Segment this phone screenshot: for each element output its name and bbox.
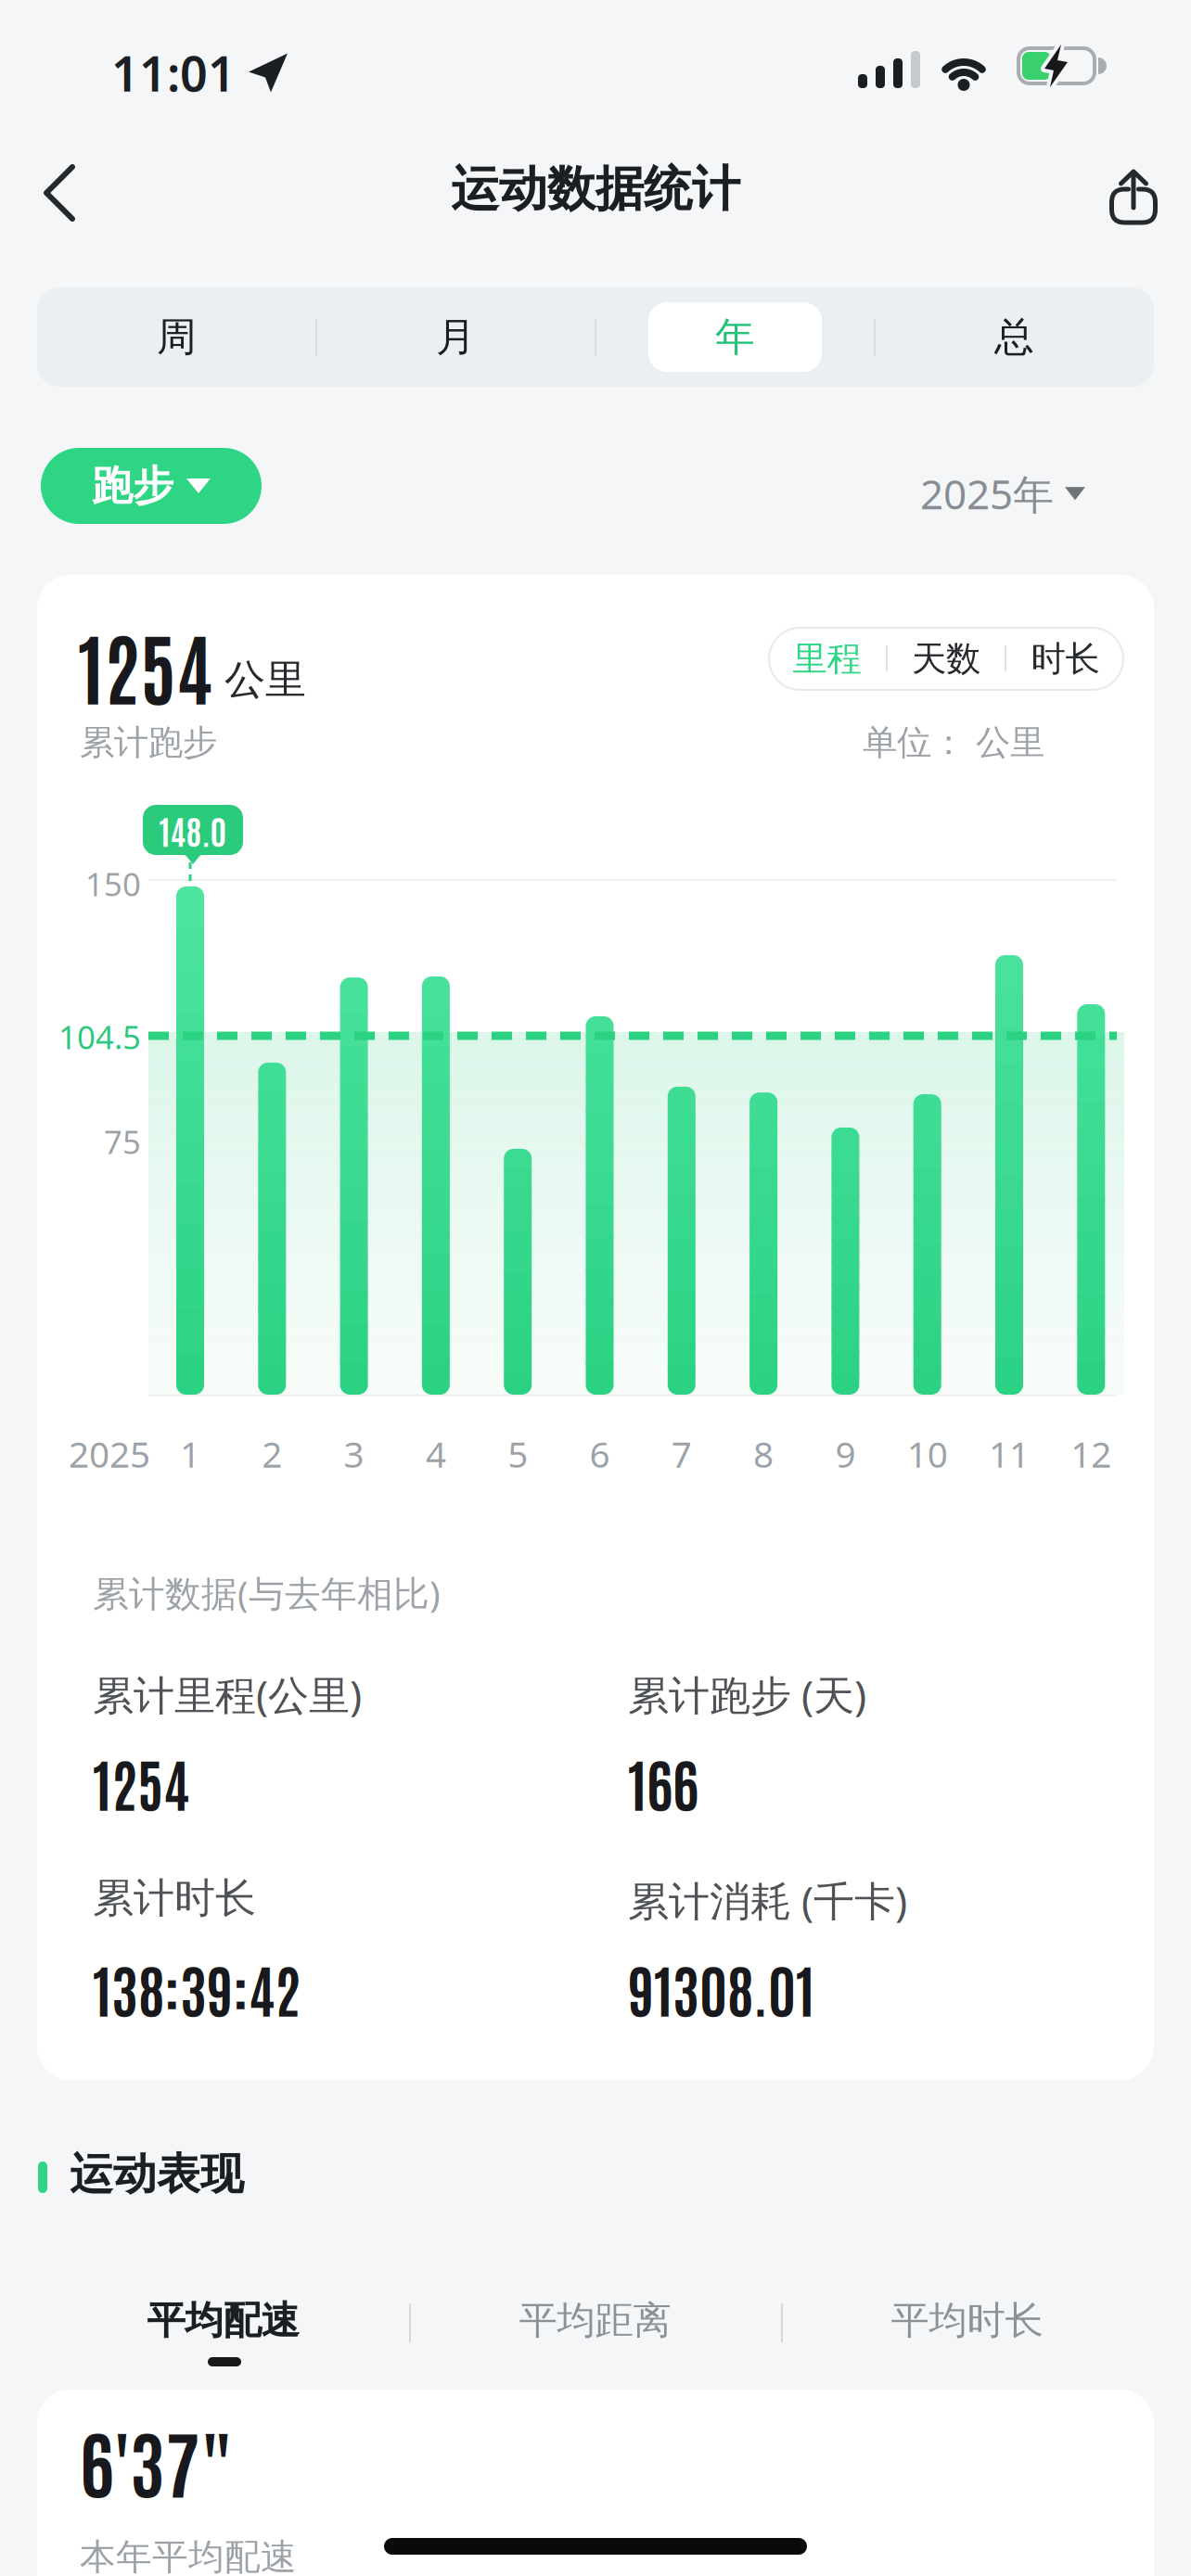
staticText: 累计消耗 (千卡) bbox=[628, 1873, 907, 1927]
staticText: 2 bbox=[262, 1430, 282, 1477]
staticText: 5 bbox=[508, 1430, 528, 1477]
staticText: 9 bbox=[835, 1430, 856, 1477]
button[interactable]: Share bbox=[1082, 150, 1156, 224]
staticText: 周 bbox=[157, 313, 197, 361]
staticText: 1254 bbox=[93, 1745, 189, 1819]
staticText: 104.5 bbox=[58, 1015, 141, 1058]
button[interactable]: 平均配速 bbox=[37, 2297, 409, 2344]
button[interactable]: 天数 bbox=[888, 638, 1005, 680]
button[interactable]: 年 bbox=[595, 287, 875, 387]
staticText: 里程 bbox=[793, 638, 861, 680]
button[interactable]: 2025年 bbox=[920, 466, 1085, 521]
staticText: 8 bbox=[753, 1430, 774, 1477]
button[interactable]: 时长 bbox=[1006, 638, 1124, 680]
button[interactable]: 周 bbox=[37, 287, 316, 387]
button[interactable]: 平均距离 bbox=[409, 2297, 781, 2344]
staticText: 运动表现 bbox=[70, 2148, 244, 2201]
staticText: 11:01 bbox=[111, 41, 236, 105]
staticText: 平均距离 bbox=[519, 2297, 671, 2344]
staticText: 累计跑步 (天) bbox=[628, 1667, 866, 1721]
staticText: 6'37" bbox=[80, 2412, 234, 2508]
staticText: 累计跑步 bbox=[80, 721, 217, 764]
button[interactable]: Back bbox=[28, 156, 102, 230]
staticText: 148.0 bbox=[159, 808, 227, 852]
staticText: 年 bbox=[715, 313, 755, 361]
staticText: 138:39:42 bbox=[93, 1951, 301, 2025]
staticText: 运动数据统计 bbox=[451, 159, 740, 219]
staticText: 平均时长 bbox=[891, 2297, 1043, 2344]
staticText: 累计数据(与去年相比) bbox=[93, 1569, 441, 1617]
staticText: 月 bbox=[436, 313, 476, 361]
staticText: 本年平均配速 bbox=[80, 2535, 297, 2576]
staticText: 总 bbox=[994, 313, 1034, 361]
staticText: 累计时长 bbox=[93, 1873, 256, 1923]
staticText: 6 bbox=[589, 1430, 610, 1477]
staticText: 1 bbox=[180, 1430, 200, 1477]
staticText: 跑步 bbox=[92, 461, 173, 511]
button[interactable]: 月 bbox=[316, 287, 595, 387]
staticText: 1254 bbox=[78, 614, 212, 715]
staticText: 平均配速 bbox=[147, 2297, 299, 2344]
staticText: 4 bbox=[426, 1430, 446, 1477]
staticText: 单位： 公里 bbox=[863, 721, 1044, 764]
staticText: 天数 bbox=[912, 638, 980, 680]
staticText: 12 bbox=[1071, 1430, 1112, 1477]
staticText: 166 bbox=[628, 1745, 698, 1819]
staticText: 91308.01 bbox=[628, 1951, 814, 2025]
staticText: 时长 bbox=[1031, 638, 1100, 680]
staticText: 累计里程(公里) bbox=[93, 1667, 362, 1721]
button[interactable]: 跑步 bbox=[41, 448, 262, 524]
button[interactable]: 里程 bbox=[768, 638, 886, 680]
staticText: 公里 bbox=[224, 655, 306, 705]
button[interactable]: 平均时长 bbox=[781, 2297, 1153, 2344]
button[interactable]: 总 bbox=[875, 287, 1154, 387]
staticText: 2025 bbox=[69, 1430, 150, 1477]
staticText: 10 bbox=[907, 1430, 948, 1477]
staticText: 150 bbox=[85, 862, 141, 905]
staticText: 7 bbox=[671, 1430, 692, 1477]
staticText: 3 bbox=[344, 1430, 364, 1477]
staticText: 11 bbox=[989, 1430, 1030, 1477]
staticText: 2025年 bbox=[920, 466, 1054, 521]
staticText: 75 bbox=[104, 1120, 141, 1163]
